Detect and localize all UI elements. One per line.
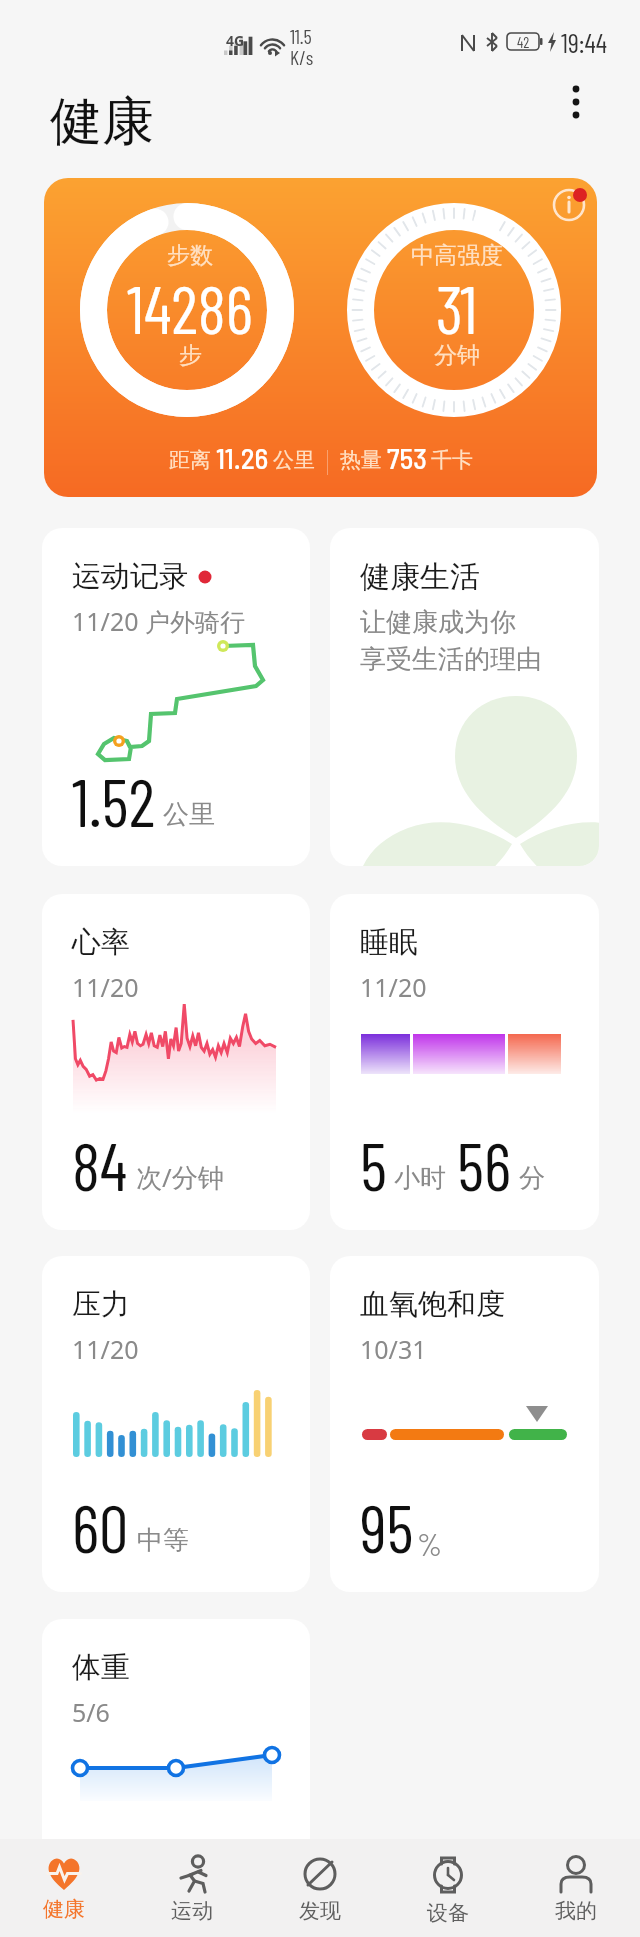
button[interactable]: 发现	[256, 1839, 384, 1937]
staticText: 健康	[50, 89, 154, 155]
staticText: 1.52	[72, 761, 155, 840]
staticText: 11.5	[290, 24, 312, 48]
button[interactable]: 健康生活	[330, 528, 599, 866]
staticText: 11.26	[216, 440, 269, 475]
staticText: 距离	[169, 447, 211, 473]
staticText: 千卡	[431, 447, 473, 473]
staticText: 发现	[299, 1898, 341, 1924]
staticText: %	[417, 1524, 442, 1562]
staticText: 小时	[394, 1162, 446, 1195]
staticText: 中等	[137, 1524, 189, 1557]
staticText: 31	[436, 268, 478, 347]
staticText: 19:44	[561, 26, 607, 58]
staticText: 心率	[72, 924, 130, 961]
button[interactable]: 健康	[0, 1839, 128, 1937]
button[interactable]: 运动记录	[42, 528, 310, 866]
button[interactable]: 压力	[42, 1256, 310, 1592]
staticText: 公里	[163, 798, 215, 831]
button[interactable]: Info	[546, 179, 594, 227]
button[interactable]: 步数	[44, 178, 597, 497]
staticText: 5/6	[72, 1695, 110, 1729]
staticText: 11/20	[360, 970, 427, 1004]
staticText: 753	[387, 440, 427, 475]
staticText: 健康生活	[360, 558, 480, 596]
staticText: 4G	[226, 31, 245, 50]
button[interactable]: More options	[552, 78, 600, 126]
staticText: 56	[457, 1125, 512, 1204]
staticText: 健康	[43, 1896, 85, 1922]
staticText: 分	[519, 1162, 545, 1195]
staticText: 95	[360, 1487, 414, 1566]
staticText: 60	[72, 1487, 129, 1566]
button[interactable]: 心率	[42, 894, 310, 1230]
staticText: 84	[72, 1125, 128, 1204]
staticText: 压力	[72, 1286, 130, 1323]
button[interactable]: 血氧饱和度	[330, 1256, 599, 1592]
button[interactable]: 体重	[42, 1619, 310, 1937]
staticText: 11/20	[72, 1332, 139, 1366]
staticText: 11/20	[72, 970, 139, 1004]
staticText: 运动	[171, 1898, 213, 1924]
staticText: K/s	[290, 45, 314, 69]
staticText: 中高强度	[411, 241, 503, 270]
staticText: 我的	[555, 1898, 597, 1924]
staticText: 5	[360, 1125, 387, 1204]
staticText: 体重	[72, 1649, 130, 1686]
button[interactable]: 设备	[384, 1839, 512, 1937]
staticText: 睡眠	[360, 924, 418, 961]
staticText: 10/31	[360, 1332, 427, 1366]
staticText: 14286	[127, 268, 253, 347]
staticText: 享受生活的理由	[360, 643, 542, 676]
staticText: 次/分钟	[136, 1159, 224, 1195]
staticText: 让健康成为你	[360, 606, 516, 639]
button[interactable]: 我的	[512, 1839, 640, 1937]
staticText: 热量	[340, 447, 382, 473]
button[interactable]: 运动	[128, 1839, 256, 1937]
button[interactable]: 睡眠	[330, 894, 599, 1230]
staticText: 步	[179, 341, 202, 370]
staticText: 设备	[427, 1900, 469, 1926]
staticText: 步数	[167, 241, 213, 270]
staticText: 分钟	[434, 341, 480, 370]
staticText: 运动记录	[72, 558, 188, 595]
staticText: 11/20 户外骑行	[72, 604, 246, 638]
staticText: 血氧饱和度	[360, 1286, 505, 1323]
staticText: 42	[517, 33, 530, 51]
staticText: 公里	[273, 447, 315, 473]
